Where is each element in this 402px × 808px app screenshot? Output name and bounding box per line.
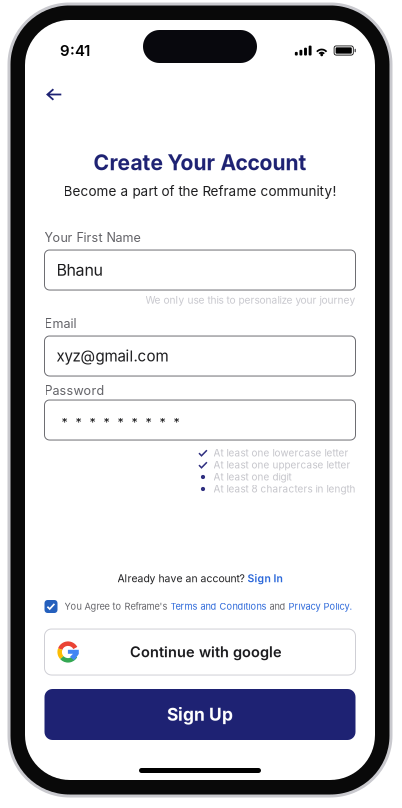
staticText: At least one uppercase letter: [213, 459, 350, 471]
staticText: xyz@gmail.com: [56, 347, 168, 365]
staticText: At least one lowercase letter: [213, 447, 348, 459]
staticText: *: [173, 415, 179, 431]
staticText: Continue with google: [130, 643, 282, 661]
staticText: Already have an account?: [117, 572, 244, 585]
staticText: Sign Up: [167, 704, 233, 725]
staticText: Create Your Account: [93, 150, 306, 175]
staticText: Sign In: [247, 572, 282, 585]
staticText: *: [117, 415, 123, 431]
staticText: *: [131, 415, 137, 431]
button[interactable]: Back: [37, 82, 71, 106]
button[interactable]: Terms and Conditions: [170, 601, 266, 612]
staticText: Email: [44, 316, 76, 331]
staticText: You Agree to Reframe's: [64, 601, 167, 612]
staticText: *: [103, 415, 109, 431]
staticText: Bhanu: [56, 260, 102, 280]
staticText: Become a part of the Reframe community!: [63, 183, 336, 199]
staticText: *: [89, 415, 95, 431]
staticText: *: [75, 415, 81, 431]
staticText: Your First Name: [44, 230, 140, 245]
button[interactable]: Privacy Policy.: [288, 601, 352, 612]
staticText: Terms and Conditions: [170, 601, 266, 612]
staticText: Password: [44, 383, 104, 398]
staticText: and: [269, 601, 285, 612]
staticText: 9:41: [60, 41, 90, 60]
staticText: *: [145, 415, 151, 431]
button[interactable]: Sign Up: [44, 689, 355, 740]
staticText: At least 8 characters in length: [213, 483, 355, 495]
button[interactable]: Sign In: [247, 572, 282, 585]
staticText: *: [61, 415, 67, 431]
staticText: *: [159, 415, 165, 431]
staticText: We only use this to personalize your jou…: [145, 294, 355, 306]
staticText: Privacy Policy.: [288, 601, 352, 612]
button[interactable]: Agree to terms and conditions: [44, 600, 57, 613]
button[interactable]: Continue with google: [44, 629, 355, 675]
staticText: At least one digit: [213, 471, 291, 483]
